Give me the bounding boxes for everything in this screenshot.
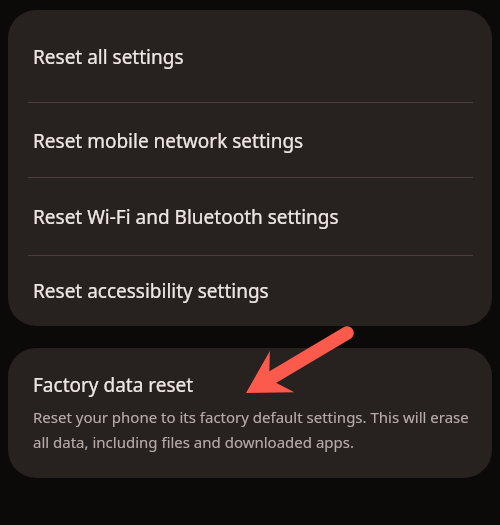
button[interactable]: Reset Wi-Fi and Bluetooth settings bbox=[8, 178, 492, 256]
staticText: Reset all settings bbox=[33, 44, 184, 70]
button[interactable]: Reset all settings bbox=[8, 10, 492, 103]
other: Annotation arrow pointing to Factory dat… bbox=[0, 0, 500, 525]
staticText: Reset your phone to its factory default … bbox=[33, 407, 474, 452]
button[interactable]: Factory data reset bbox=[8, 348, 492, 478]
staticText: Factory data reset bbox=[33, 372, 194, 398]
button[interactable]: Reset accessibility settings bbox=[8, 256, 492, 326]
staticText: Reset Wi-Fi and Bluetooth settings bbox=[33, 204, 339, 230]
button[interactable]: Reset mobile network settings bbox=[8, 103, 492, 178]
staticText: Reset mobile network settings bbox=[33, 128, 304, 154]
staticText: Reset accessibility settings bbox=[33, 278, 269, 304]
